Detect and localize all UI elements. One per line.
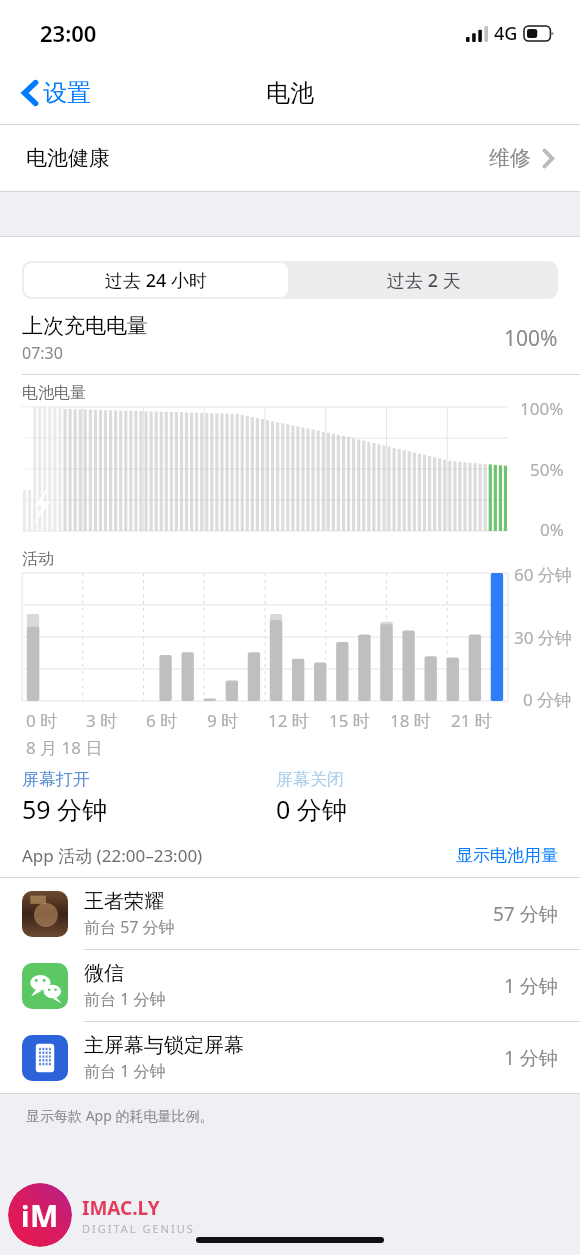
- staticText: 15 时: [329, 709, 370, 732]
- staticText: 过去 2 天: [387, 268, 461, 293]
- staticText: M: [30, 1195, 59, 1236]
- staticText: 0 分钟: [523, 688, 572, 711]
- staticText: 活动: [22, 549, 54, 569]
- staticText: 12 时: [268, 709, 309, 732]
- staticText: 王者荣耀: [84, 889, 164, 914]
- staticText: 4G: [494, 21, 518, 46]
- staticText: 50%: [530, 458, 564, 481]
- staticText: i: [21, 1197, 30, 1235]
- staticText: 100%: [520, 397, 564, 420]
- staticText: 前台 57 分钟: [84, 916, 175, 938]
- staticText: 电池电量: [22, 383, 86, 403]
- staticText: 过去 24 小时: [105, 268, 207, 293]
- staticText: DIGITAL GENIUS: [82, 1221, 195, 1236]
- button[interactable]: 过去 2 天: [290, 261, 558, 299]
- staticText: 显示每款 App 的耗电量比例。: [26, 1106, 214, 1125]
- staticText: 屏幕打开: [22, 769, 90, 790]
- staticText: IMAC.LY: [82, 1195, 160, 1221]
- staticText: 微信: [84, 961, 124, 986]
- staticText: 9 时: [207, 709, 239, 732]
- staticText: 8 月 18 日: [26, 736, 103, 759]
- button[interactable]: 主屏幕与锁定屏幕: [0, 1022, 580, 1093]
- staticText: 电池: [266, 78, 314, 108]
- staticText: 60 分钟: [514, 563, 572, 586]
- button[interactable]: 设置: [16, 72, 97, 114]
- staticText: 6 时: [146, 709, 178, 732]
- staticText: 30 分钟: [514, 626, 572, 649]
- staticText: 07:30: [22, 342, 63, 364]
- button[interactable]: 王者荣耀: [0, 878, 580, 949]
- staticText: 前台 1 分钟: [84, 1060, 166, 1082]
- staticText: 100%: [504, 324, 558, 353]
- button[interactable]: 微信: [0, 950, 580, 1021]
- staticText: 维修: [489, 145, 531, 171]
- staticText: 0%: [540, 518, 564, 541]
- staticText: 3 时: [86, 709, 118, 732]
- staticText: 前台 1 分钟: [84, 988, 166, 1010]
- staticText: 0 分钟: [276, 792, 347, 826]
- staticText: App 活动 (22:00–23:00): [22, 844, 203, 867]
- staticText: 21 时: [451, 709, 492, 732]
- staticText: 屏幕关闭: [276, 769, 344, 790]
- staticText: 电池健康: [26, 145, 110, 171]
- staticText: 23:00: [40, 18, 97, 48]
- staticText: 57 分钟: [493, 901, 558, 927]
- staticText: 59 分钟: [22, 792, 108, 826]
- staticText: 设置: [43, 78, 91, 108]
- staticText: 0 时: [26, 709, 58, 732]
- staticText: 主屏幕与锁定屏幕: [84, 1033, 244, 1058]
- staticText: 显示电池用量: [456, 845, 558, 866]
- button[interactable]: 显示电池用量: [456, 845, 558, 866]
- button[interactable]: 电池健康: [0, 125, 580, 191]
- staticText: 18 时: [390, 709, 431, 732]
- staticText: 1 分钟: [504, 1045, 558, 1071]
- button[interactable]: 过去 24 小时: [24, 263, 288, 297]
- staticText: 1 分钟: [504, 973, 558, 999]
- staticText: 上次充电电量: [22, 313, 148, 339]
